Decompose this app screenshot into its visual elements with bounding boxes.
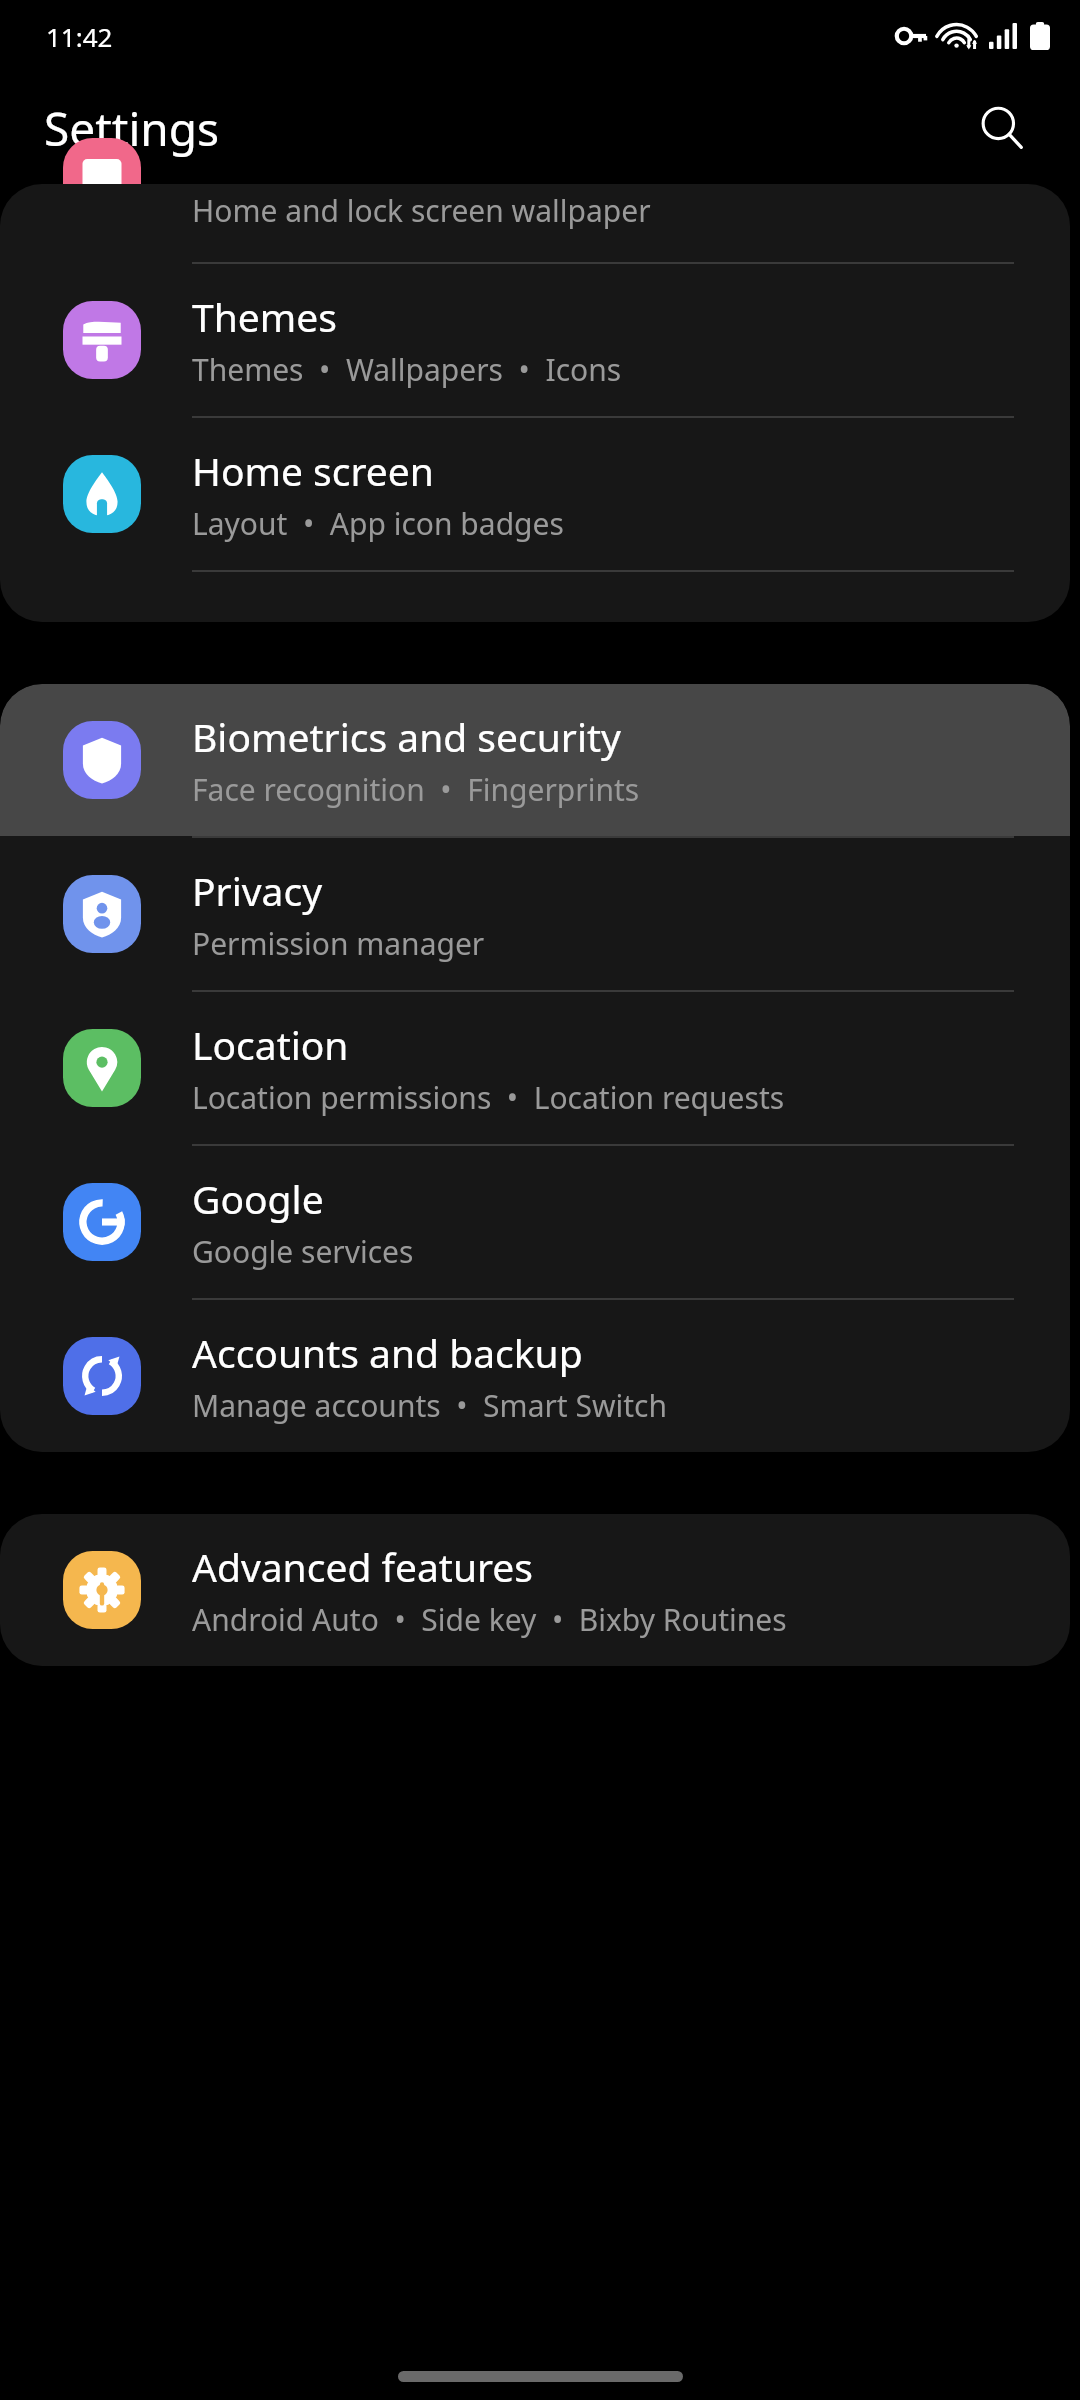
staticText: Layout • App icon badges	[192, 503, 564, 544]
staticText: Biometrics and security	[192, 710, 622, 763]
staticText: Face recognition • Fingerprints	[192, 769, 640, 810]
button[interactable]: Privacy	[0, 838, 1070, 990]
staticText: Manage accounts • Smart Switch	[192, 1385, 668, 1426]
staticText: Settings	[44, 97, 220, 160]
button[interactable]: Search	[960, 86, 1044, 170]
staticText: Themes	[192, 290, 337, 343]
staticText: Permission manager	[192, 923, 485, 964]
button[interactable]: Advanced features	[0, 1514, 1070, 1666]
staticText: Google	[192, 1172, 324, 1225]
staticText: Themes • Wallpapers • Icons	[192, 349, 622, 390]
button[interactable]: Home screen	[0, 418, 1070, 570]
button[interactable]: Home	[398, 2371, 683, 2382]
button[interactable]: Biometrics and security	[0, 684, 1070, 836]
staticText: Google services	[192, 1231, 414, 1272]
staticText: Location	[192, 1018, 349, 1071]
staticText: Accounts and backup	[192, 1326, 583, 1379]
staticText: Location permissions • Location requests	[192, 1077, 785, 1118]
button[interactable]: Google	[0, 1146, 1070, 1298]
staticText: 11:42	[46, 19, 113, 54]
staticText: Privacy	[192, 864, 323, 917]
staticText: Home screen	[192, 444, 434, 497]
staticText: Advanced features	[192, 1540, 534, 1593]
staticText: Home and lock screen wallpaper	[192, 190, 651, 231]
button[interactable]: Accounts and backup	[0, 1300, 1070, 1452]
staticText: Android Auto • Side key • Bixby Routines	[192, 1599, 787, 1640]
button[interactable]: Location	[0, 992, 1070, 1144]
button[interactable]: Themes	[0, 264, 1070, 416]
